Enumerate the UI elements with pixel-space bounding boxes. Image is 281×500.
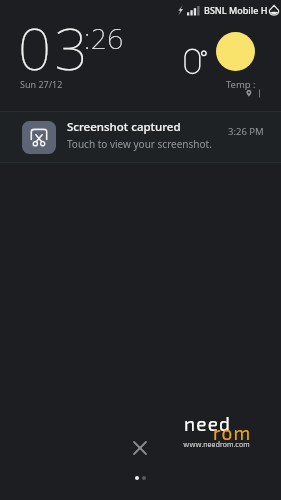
staticText: Sun 27/12 (20, 78, 63, 90)
staticText: Temp (226, 78, 251, 91)
staticText: need (184, 412, 232, 435)
button[interactable]: Screenshot captured (0, 112, 281, 162)
button[interactable]: Clear all notifications (128, 436, 152, 460)
staticText: BSNL Mobile H (204, 4, 268, 16)
staticText: www.needrom.com (183, 440, 250, 449)
staticText: Touch to view your screenshot. (67, 137, 212, 151)
staticText: Screenshot captured (67, 119, 181, 135)
staticText: 03 (18, 8, 92, 87)
staticText: 3:26 PM (228, 125, 264, 138)
staticText: rom (213, 421, 252, 444)
staticText: :26 (84, 19, 124, 57)
staticText: : (253, 78, 256, 91)
